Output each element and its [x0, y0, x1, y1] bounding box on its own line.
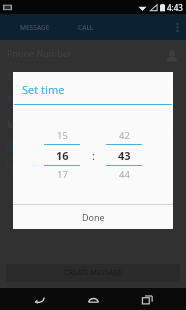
button[interactable]: MESSAGE: [14, 23, 56, 32]
button[interactable]: Back: [24, 288, 54, 310]
button[interactable]: 16: [41, 145, 83, 165]
staticText: Message: [7, 118, 45, 130]
staticText: :: [92, 148, 95, 163]
staticText: MESSAGE: [20, 23, 50, 32]
staticText: CALL: [78, 23, 94, 32]
staticText: 16:43: [7, 70, 31, 82]
button[interactable]: 17: [41, 166, 83, 183]
button[interactable]: 42: [103, 127, 145, 144]
staticText: 42: [119, 129, 130, 142]
button[interactable]: 43: [103, 145, 145, 165]
staticText: Done: [82, 211, 105, 223]
staticText: Phone Number: [7, 47, 72, 59]
staticText: 15: [57, 129, 68, 142]
button[interactable]: Done: [13, 205, 173, 229]
staticText: Set time: [22, 82, 65, 97]
staticText: 16: [56, 148, 69, 163]
staticText: CREATE MESSAGE: [64, 268, 122, 278]
button[interactable]: 15: [41, 127, 83, 144]
staticText: 16:43: [7, 93, 31, 105]
button[interactable]: Home: [78, 288, 108, 310]
staticText: 44: [119, 168, 130, 181]
button[interactable]: Recent apps: [132, 288, 162, 310]
staticText: 17: [57, 168, 68, 181]
button[interactable]: 44: [103, 166, 145, 183]
button[interactable]: More options: [168, 14, 186, 40]
button[interactable]: CALL: [72, 23, 100, 32]
staticText: 4:43: [167, 2, 183, 13]
staticText: 43: [118, 148, 131, 163]
